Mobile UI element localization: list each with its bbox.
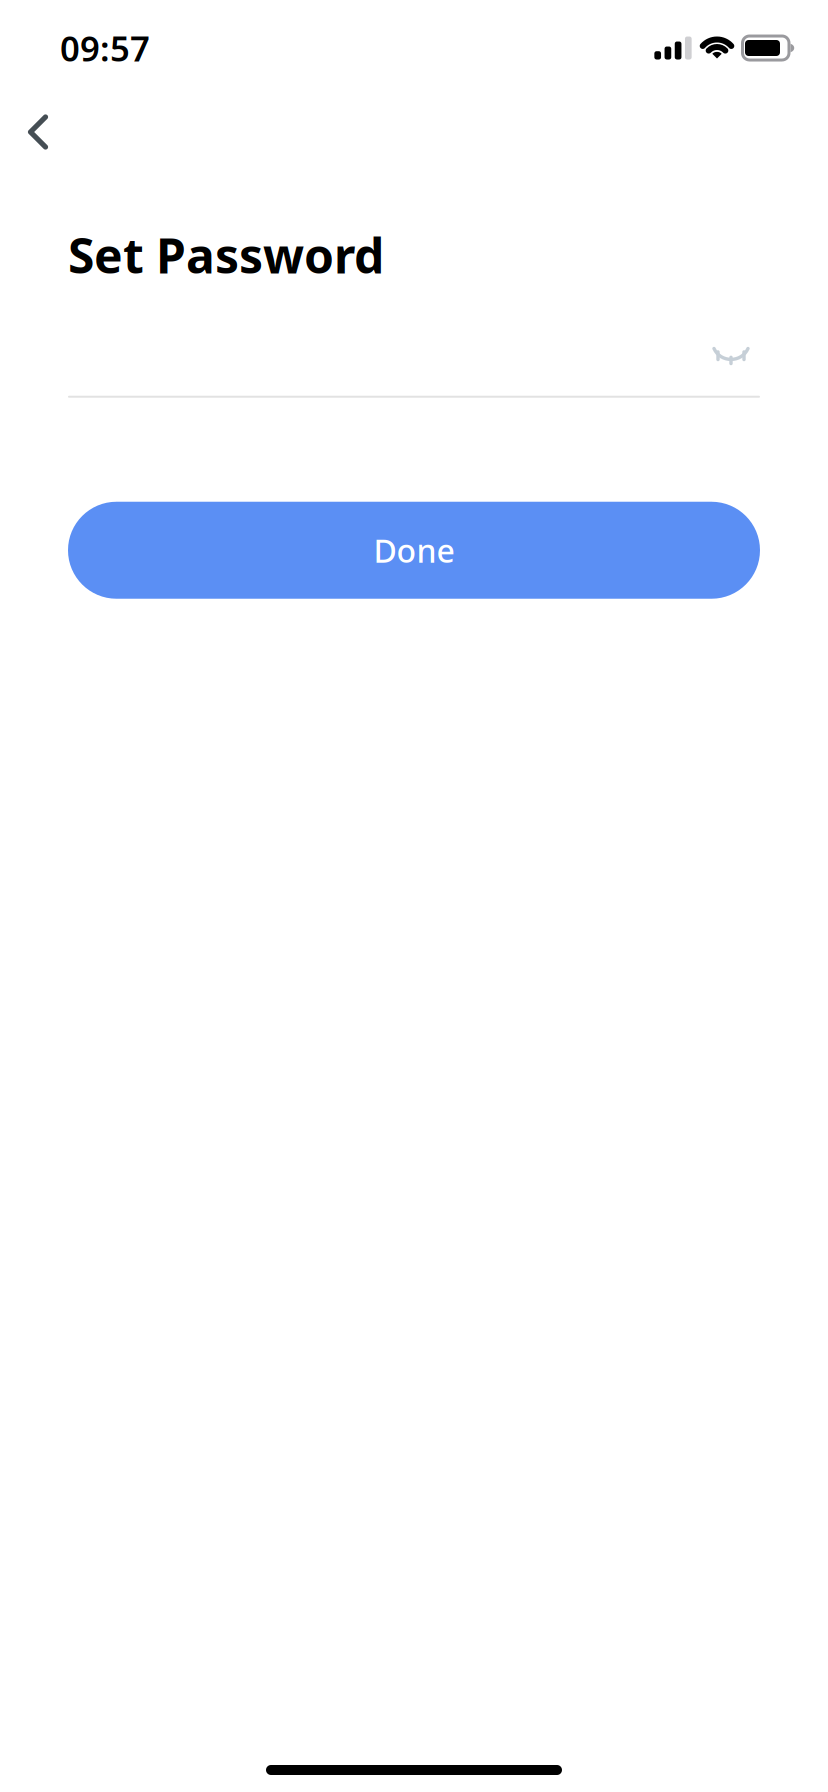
staticText: 09:57: [60, 25, 150, 71]
button[interactable]: Show password: [704, 335, 760, 379]
button[interactable]: Back: [7, 101, 69, 163]
staticText: Set Password: [68, 223, 384, 287]
button[interactable]: Done: [68, 502, 760, 599]
staticText: Done: [373, 529, 454, 571]
